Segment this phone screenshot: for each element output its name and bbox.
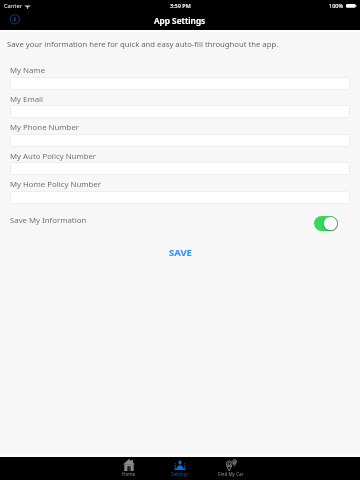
staticText: Save your information here for quick and… <box>7 39 279 49</box>
button[interactable] <box>10 105 350 118</box>
staticText: Carrier <box>4 2 22 9</box>
staticText: My Phone Number <box>10 122 80 133</box>
button[interactable] <box>10 162 350 175</box>
button[interactable]: Save My Information toggle <box>313 215 339 232</box>
button[interactable] <box>10 134 350 147</box>
staticText: My Auto Policy Number <box>10 151 97 162</box>
staticText: Find My Car <box>218 471 244 477</box>
button[interactable]: Settings <box>157 457 203 480</box>
staticText: App Settings <box>154 15 206 26</box>
button[interactable] <box>10 191 350 204</box>
button[interactable] <box>10 77 350 90</box>
button[interactable]: Home <box>106 457 152 480</box>
staticText: My Email <box>10 94 44 105</box>
staticText: SAVE <box>169 246 192 259</box>
button[interactable]: SAVE <box>0 245 360 259</box>
staticText: 3:59 PM <box>170 2 191 9</box>
staticText: Save My Information <box>10 215 87 226</box>
staticText: 100% <box>329 2 344 9</box>
staticText: My Name <box>10 65 46 76</box>
staticText: Settings <box>171 471 189 477</box>
staticText: Home <box>122 471 136 477</box>
button[interactable]: Info <box>8 13 22 27</box>
staticText: My Home Policy Number <box>10 179 101 190</box>
button[interactable]: Find My Car <box>208 457 254 480</box>
